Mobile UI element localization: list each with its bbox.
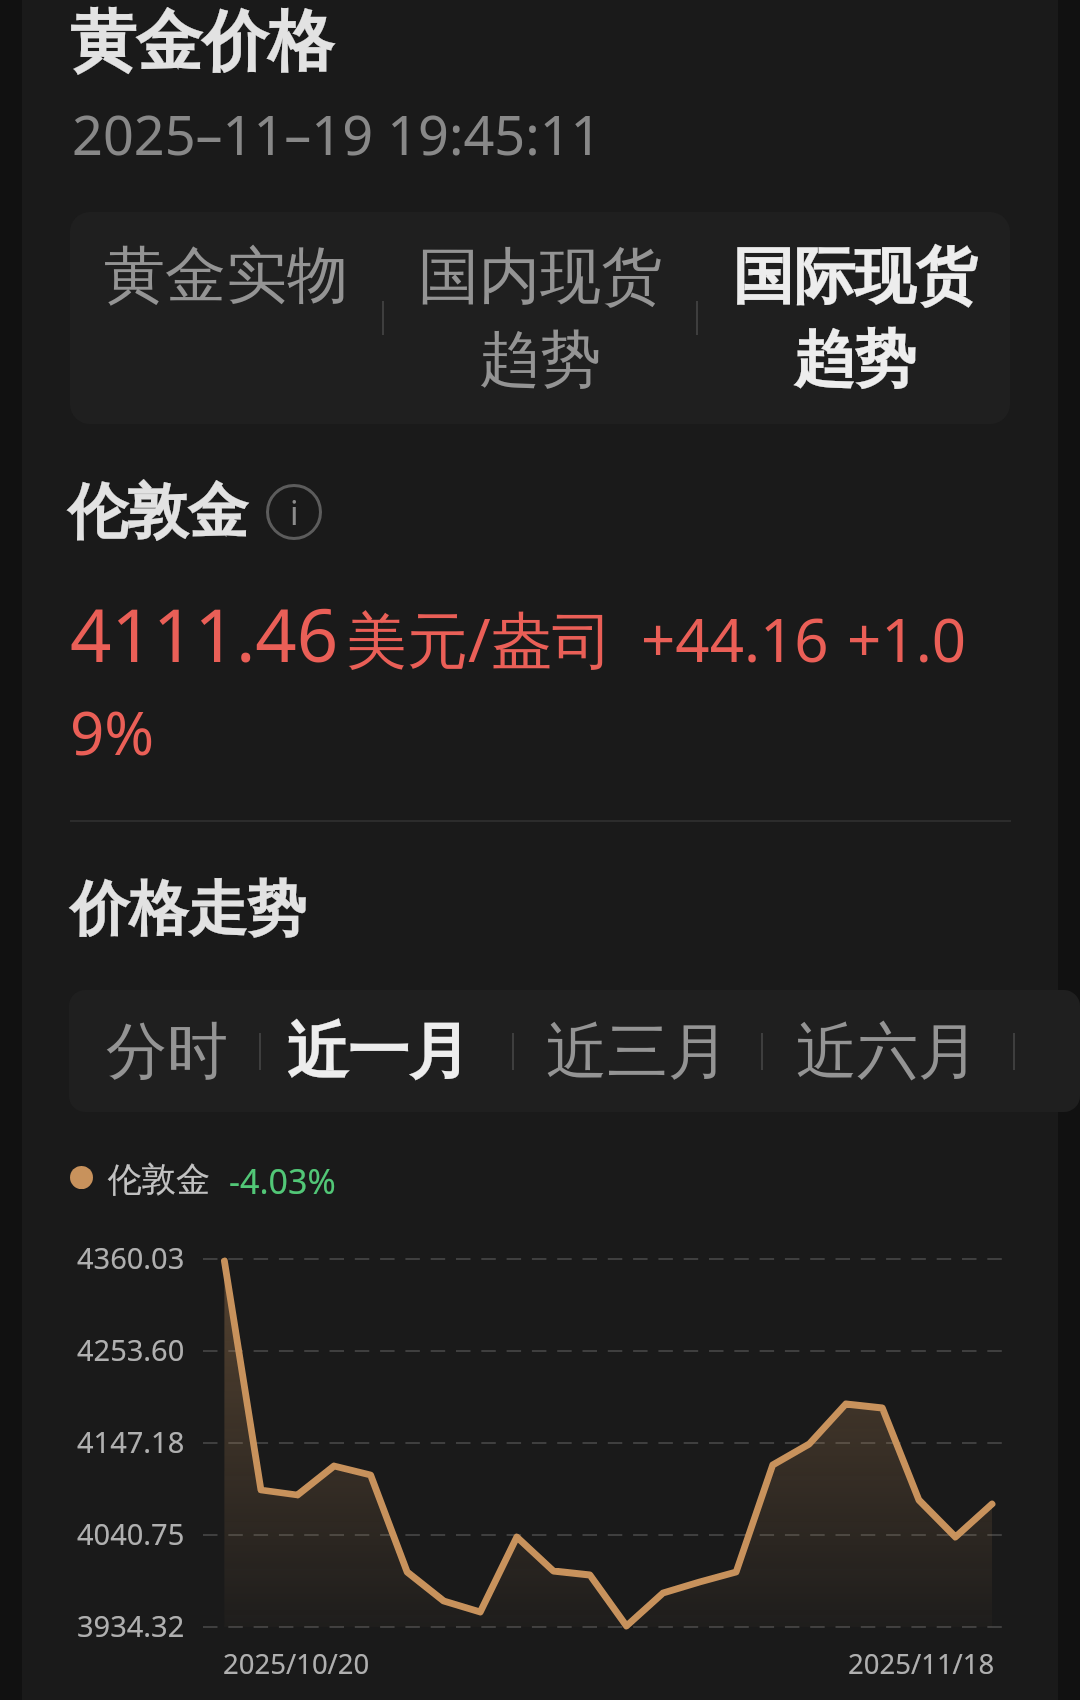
staticText: +44.16: [641, 598, 829, 680]
staticText: 4040.75: [77, 1514, 185, 1553]
staticText: 4253.60: [77, 1330, 185, 1369]
staticText: i: [290, 490, 299, 535]
staticText: 近一月: [287, 1013, 470, 1090]
staticText: 国内现货 趋势: [418, 238, 662, 398]
staticText: 3934.32: [77, 1606, 185, 1645]
staticText: 黄金实物: [104, 237, 348, 400]
button[interactable]: 近三月: [514, 990, 761, 1112]
button[interactable]: 近一月: [261, 990, 512, 1112]
staticText: 近六月: [796, 1013, 979, 1090]
staticText: 美元/盎司: [346, 597, 613, 680]
staticText: 伦敦金: [68, 474, 248, 550]
staticText: 2025–11–19 19:45:11: [72, 97, 602, 171]
button[interactable]: 黄金实物: [70, 212, 382, 424]
staticText: 国际现货 趋势: [732, 238, 977, 398]
staticText: -4.03%: [229, 1158, 336, 1204]
button[interactable]: 近六月: [763, 990, 1013, 1112]
staticText: 价格走势: [70, 872, 306, 946]
staticText: 近三月: [546, 1013, 729, 1090]
staticText: 9%: [70, 691, 155, 773]
staticText: 2025/11/18: [848, 1645, 995, 1682]
button[interactable]: 国内现货 趋势: [384, 212, 696, 424]
button[interactable]: Info: [266, 484, 322, 540]
staticText: +1.0: [847, 598, 967, 680]
staticText: 分时: [106, 1013, 228, 1090]
staticText: 黄金价格: [70, 0, 334, 83]
staticText: 4111.46: [70, 584, 339, 683]
staticText: 4147.18: [77, 1422, 185, 1461]
staticText: 伦敦金: [108, 1158, 210, 1201]
button[interactable]: 国际现货 趋势: [698, 212, 1010, 424]
staticText: 4360.03: [77, 1238, 185, 1277]
staticText: 2025/10/20: [223, 1645, 370, 1682]
button[interactable]: 分时: [69, 990, 259, 1112]
